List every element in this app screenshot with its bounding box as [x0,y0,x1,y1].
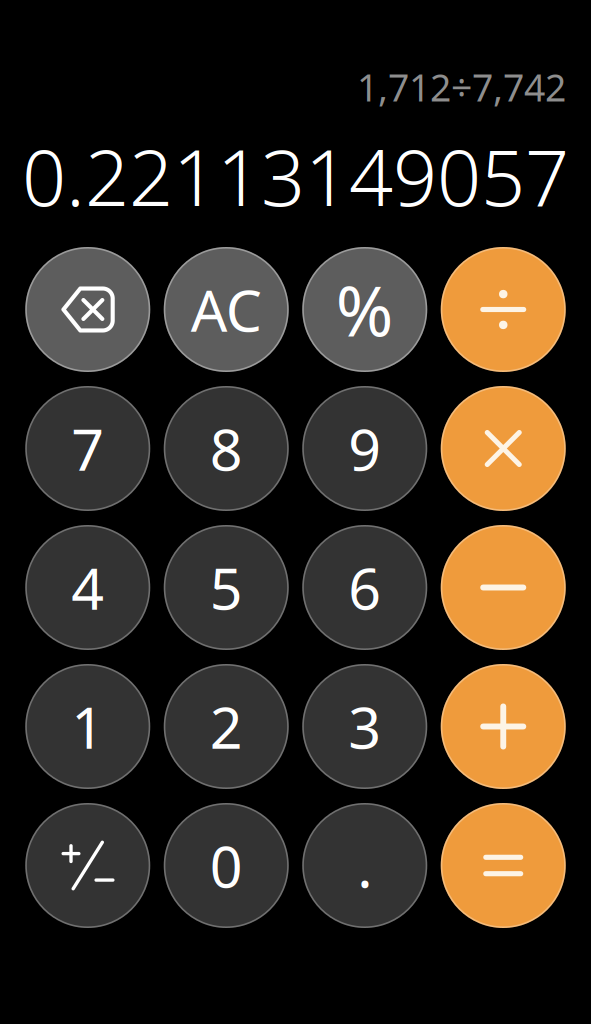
staticText: 7 [71,410,104,486]
staticText: 0 [210,827,243,903]
staticText: 4 [71,549,104,625]
button[interactable]: 5 [164,525,289,650]
staticText: 8 [210,410,243,486]
staticText: 6 [348,549,381,625]
staticText: 2 [210,688,243,764]
staticText: 3 [348,688,381,764]
button[interactable]: 6 [302,525,427,650]
button[interactable]: Percent [302,247,427,372]
button[interactable]: Decimal point [302,803,427,928]
button[interactable]: All clear [164,247,289,372]
button[interactable]: Divide [441,247,566,372]
button[interactable]: 2 [164,664,289,789]
staticText: 1 [71,688,104,764]
staticText: % [336,263,394,356]
staticText: 5 [210,549,243,625]
button[interactable]: 4 [25,525,150,650]
staticText: . [357,827,372,903]
button[interactable]: Subtract [441,525,566,650]
button[interactable]: Equals [441,803,566,928]
staticText: 0.22113149057 [22,125,569,227]
button[interactable]: 9 [302,386,427,511]
button[interactable]: 3 [302,664,427,789]
button[interactable]: 0 [164,803,289,928]
button[interactable]: 1 [25,664,150,789]
staticText: 9 [348,410,381,486]
staticText: AC [191,271,262,347]
button[interactable]: Delete [25,247,150,372]
button[interactable]: 7 [25,386,150,511]
button[interactable]: Add [441,664,566,789]
button[interactable]: Toggle sign [25,803,150,928]
button[interactable]: 8 [164,386,289,511]
staticText: 1,712÷7,742 [357,62,566,112]
button[interactable]: Multiply [441,386,566,511]
